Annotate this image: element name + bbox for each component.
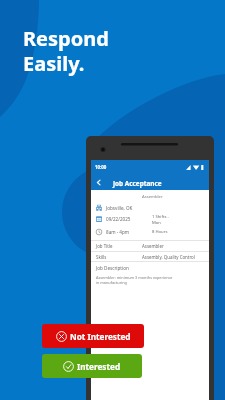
staticText: Jobsville, OK xyxy=(106,205,133,211)
staticText: Job Description xyxy=(96,265,129,271)
staticText: Assembler xyxy=(142,243,164,249)
staticText: Interested xyxy=(77,361,121,372)
button[interactable]: Not Interested xyxy=(42,324,144,348)
staticText: Assembler xyxy=(142,194,163,200)
staticText: Respond Easily. xyxy=(23,25,109,77)
staticText: Assembler: minimum 3 months experience i… xyxy=(96,275,173,286)
button[interactable]: Interested xyxy=(42,354,142,378)
staticText: 8 Hours xyxy=(152,229,168,235)
staticText: 09/22/2025 xyxy=(106,216,131,222)
staticText: 10:00 xyxy=(95,164,107,170)
staticText: Skills xyxy=(96,254,107,260)
staticText: Job Acceptance xyxy=(113,179,162,188)
staticText: Assembly, Quality Control xyxy=(142,254,195,260)
staticText: 1 Shifts - Mon xyxy=(152,214,169,225)
staticText: Not Interested xyxy=(70,331,131,342)
staticText: Job Title xyxy=(96,243,113,249)
staticText: 8am - 4pm xyxy=(106,229,130,235)
button[interactable]: Back xyxy=(93,177,104,188)
